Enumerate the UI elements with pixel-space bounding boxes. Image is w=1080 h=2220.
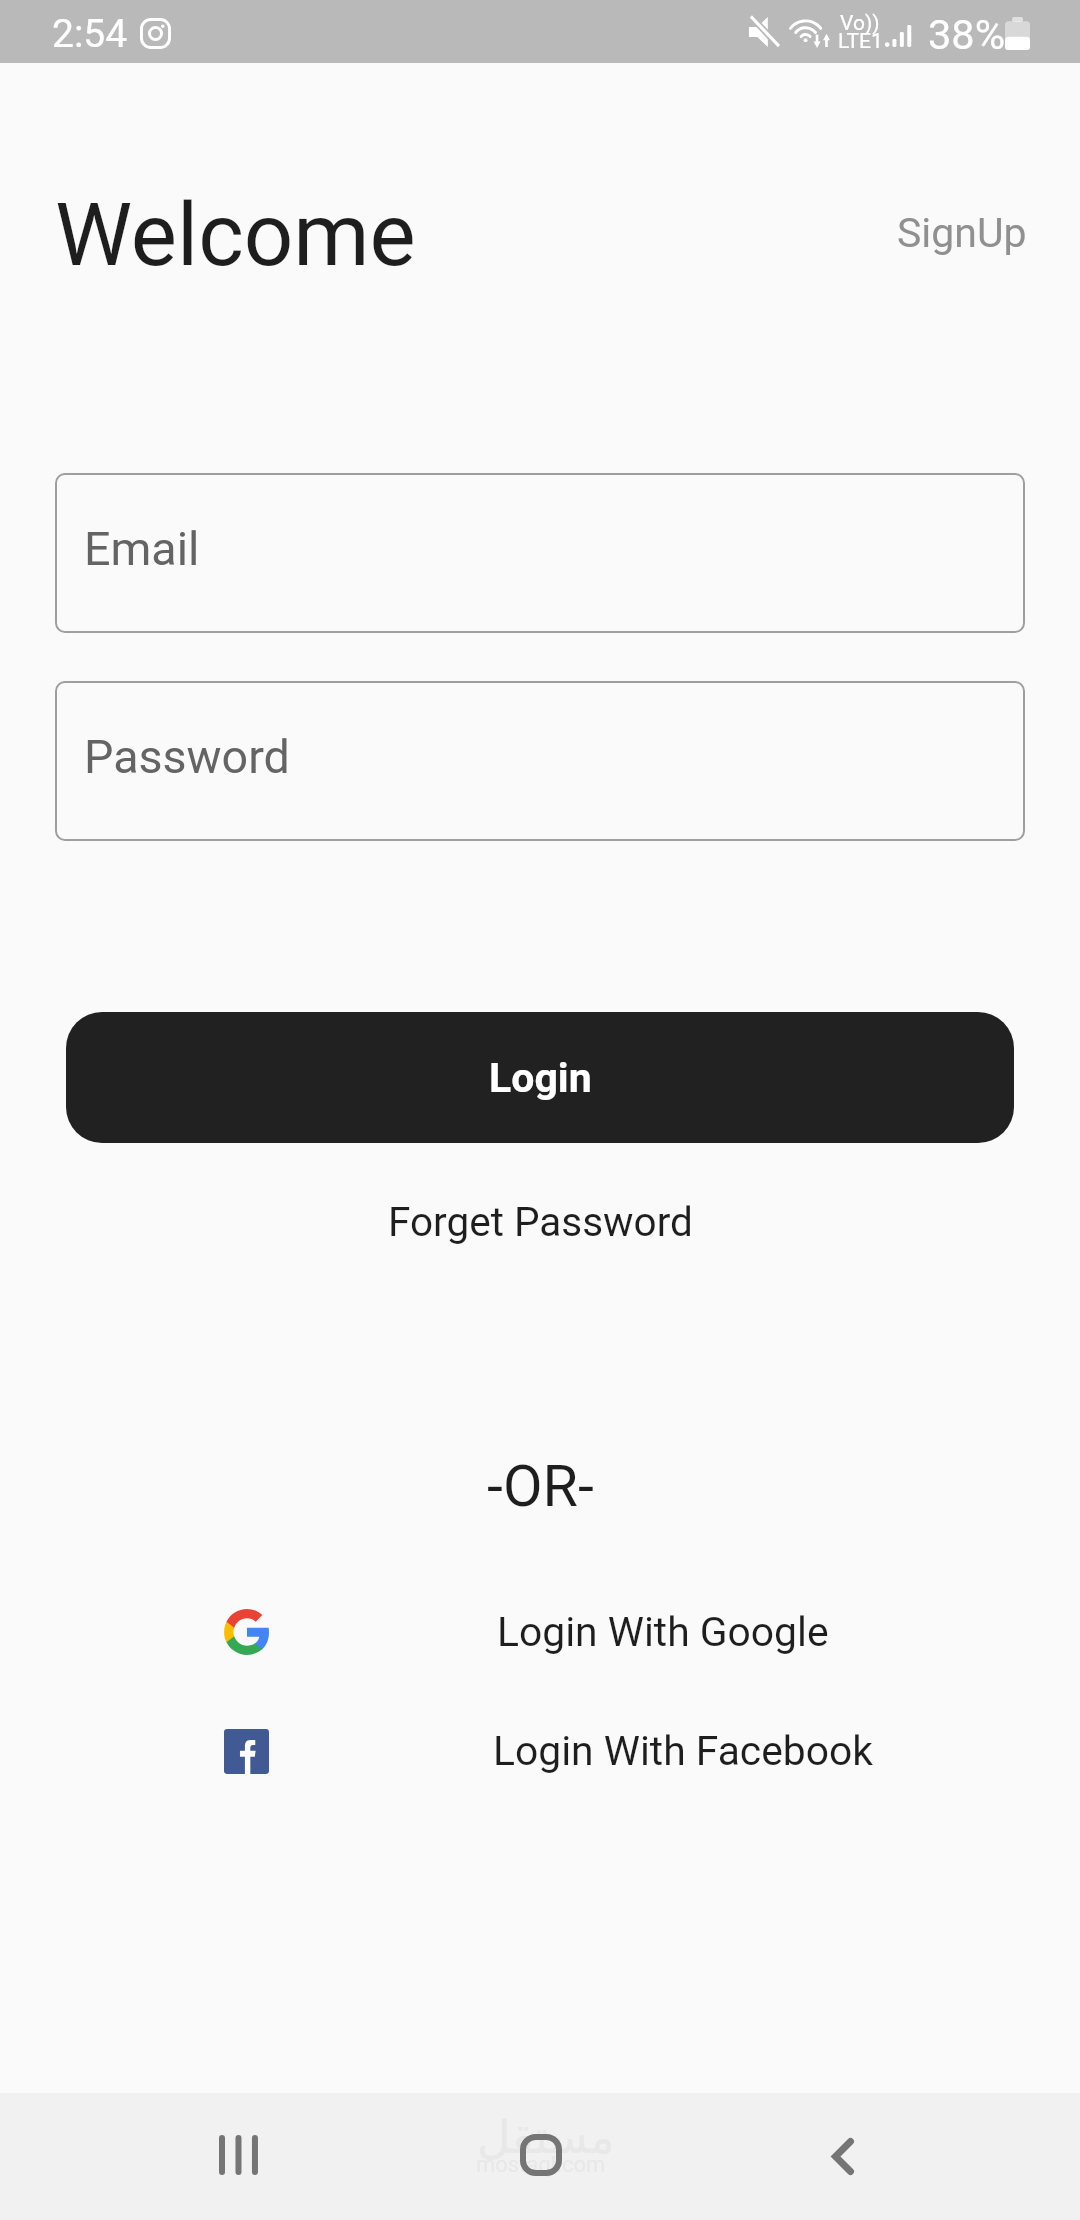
staticText: Email <box>84 522 200 577</box>
button[interactable]: Login With Google <box>0 1582 1080 1682</box>
button[interactable]: Email <box>55 473 1025 633</box>
staticText: مستقل <box>477 2110 615 2164</box>
button[interactable]: Back <box>783 2096 903 2216</box>
button[interactable]: Home <box>481 2095 601 2215</box>
button[interactable]: Password <box>55 681 1025 841</box>
staticText: Forget Password <box>388 1198 693 1245</box>
staticText: -OR- <box>487 1453 594 1520</box>
staticText: 38% <box>928 10 1006 59</box>
staticText: Password <box>84 730 290 785</box>
button[interactable]: Forget Password <box>388 1198 693 1245</box>
staticText: Login <box>489 1054 592 1102</box>
staticText: Welcome <box>55 184 416 286</box>
button[interactable]: Recent apps <box>178 2095 298 2215</box>
staticText: SignUp <box>897 209 1027 257</box>
staticText: LTE1 <box>838 29 883 54</box>
staticText: Login With Google <box>497 1608 829 1656</box>
button[interactable]: SignUp <box>879 197 1045 269</box>
staticText: 2:54 <box>52 11 128 57</box>
staticText: mostaql.com <box>476 2152 606 2178</box>
staticText: Vo)) <box>840 11 880 36</box>
button[interactable]: Login <box>66 1012 1014 1143</box>
button[interactable]: Login With Facebook <box>0 1701 1080 1801</box>
staticText: Login With Facebook <box>493 1727 873 1775</box>
